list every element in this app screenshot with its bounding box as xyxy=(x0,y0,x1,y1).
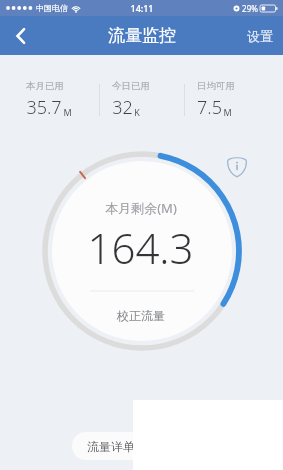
staticText: 29% xyxy=(242,3,258,14)
staticText: 14:11 xyxy=(130,2,154,14)
staticText: 校正流量 xyxy=(117,308,165,323)
button[interactable]: Info xyxy=(224,154,250,180)
button[interactable]: 流量详单 xyxy=(72,432,150,460)
staticText: 设置 xyxy=(247,28,273,44)
staticText: K xyxy=(134,106,140,118)
button[interactable]: Back xyxy=(0,16,42,55)
staticText: 32 xyxy=(112,95,133,120)
staticText: 今日已用 xyxy=(112,80,150,92)
staticText: 7.5 xyxy=(197,95,222,120)
staticText: 本月已用 xyxy=(26,80,64,92)
staticText: 日均可用 xyxy=(197,80,235,92)
staticText: 流量监控 xyxy=(108,25,176,46)
button[interactable]: 校正流量 xyxy=(89,301,193,329)
button[interactable]: 设置 xyxy=(247,28,273,44)
staticText: 中国电信 xyxy=(36,3,68,13)
staticText: 164.3 xyxy=(87,219,194,276)
staticText: M xyxy=(63,106,72,118)
staticText: M xyxy=(223,106,232,118)
staticText: 流量详单 xyxy=(87,439,135,454)
staticText: 本月剩余(M) xyxy=(105,199,177,217)
staticText: 35.7 xyxy=(26,95,62,120)
